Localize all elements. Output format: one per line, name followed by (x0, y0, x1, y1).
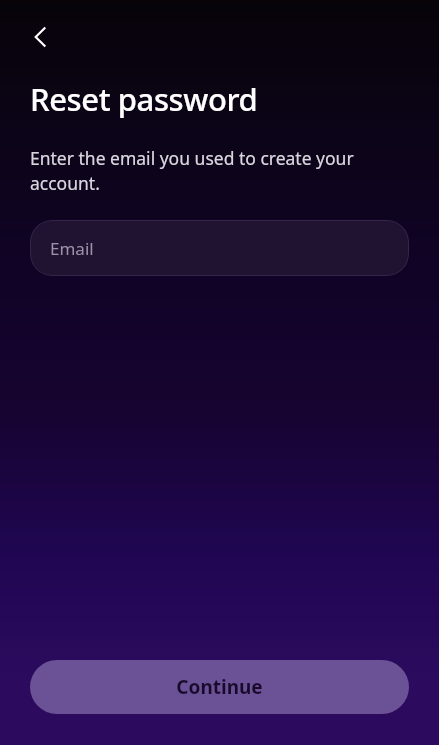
staticText: Email (50, 237, 94, 260)
staticText: Enter the email you used to create your … (30, 146, 391, 196)
button[interactable]: Email (30, 220, 409, 276)
staticText: Reset password (30, 78, 258, 120)
button[interactable]: Back (18, 14, 64, 60)
staticText: Continue (176, 674, 263, 700)
button[interactable]: Continue (30, 660, 409, 714)
